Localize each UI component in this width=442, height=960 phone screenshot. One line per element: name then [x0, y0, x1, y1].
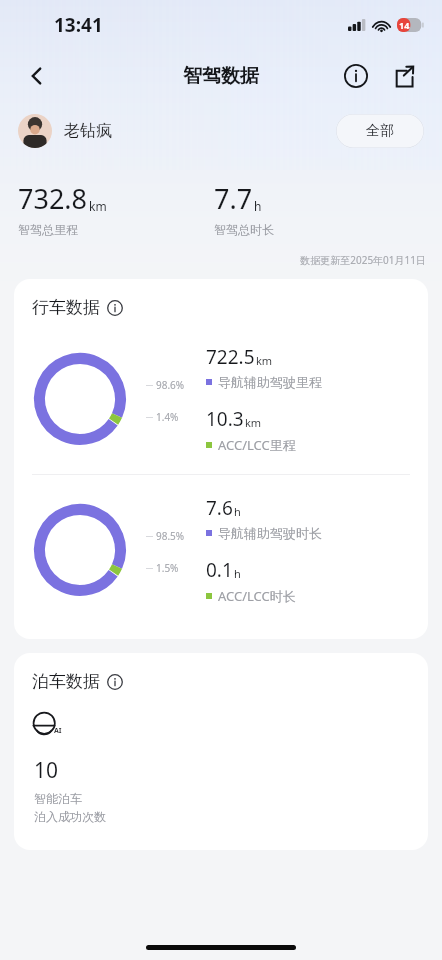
staticText: km [89, 198, 107, 214]
staticText: 13:41 [54, 12, 103, 38]
staticText: 导航辅助驾驶里程 [218, 374, 322, 390]
staticText: ACC/LCC时长 [218, 587, 296, 605]
staticText: 7.7 [214, 180, 253, 217]
staticText: h [234, 566, 241, 581]
staticText: 智驾数据 [183, 64, 259, 88]
staticText: km [256, 353, 273, 368]
staticText: 行车数据 [32, 297, 100, 318]
button[interactable]: 泊车数据 [32, 671, 123, 692]
button[interactable]: 全部 [336, 114, 424, 148]
staticText: 全部 [366, 122, 394, 140]
button[interactable]: Info [338, 58, 374, 94]
staticText: 泊车数据 [32, 671, 100, 692]
staticText: 732.8 [18, 180, 88, 217]
button[interactable]: Share [386, 58, 422, 94]
staticText: 98.5% [156, 529, 185, 543]
staticText: 导航辅助驾驶时长 [218, 525, 322, 541]
staticText: 1.4% [156, 410, 179, 424]
button[interactable]: 行车数据 [32, 297, 123, 318]
staticText: h [254, 198, 262, 214]
staticText: 722.5 [206, 344, 255, 370]
staticText: 0.1 [206, 557, 233, 583]
staticText: AI [54, 726, 62, 736]
button[interactable]: Back [16, 55, 58, 97]
staticText: km [245, 415, 262, 430]
staticText: 1.5% [156, 561, 179, 575]
staticText: 10.3 [206, 406, 244, 432]
staticText: 数据更新至2025年01月11日 [0, 253, 426, 267]
staticText: 老钻疯 [64, 121, 112, 141]
staticText: 7.6 [206, 495, 233, 521]
staticText: 泊入成功次数 [34, 809, 106, 824]
staticText: 智驾总时长 [214, 222, 274, 237]
staticText: 98.6% [156, 378, 185, 392]
button[interactable]: 老钻疯 [18, 114, 112, 148]
staticText: 10 [34, 756, 59, 785]
staticText: ACC/LCC里程 [218, 436, 296, 454]
staticText: 14 [399, 19, 410, 31]
staticText: 智能泊车 [34, 791, 82, 806]
staticText: h [234, 504, 241, 519]
staticText: 智驾总里程 [18, 222, 78, 237]
